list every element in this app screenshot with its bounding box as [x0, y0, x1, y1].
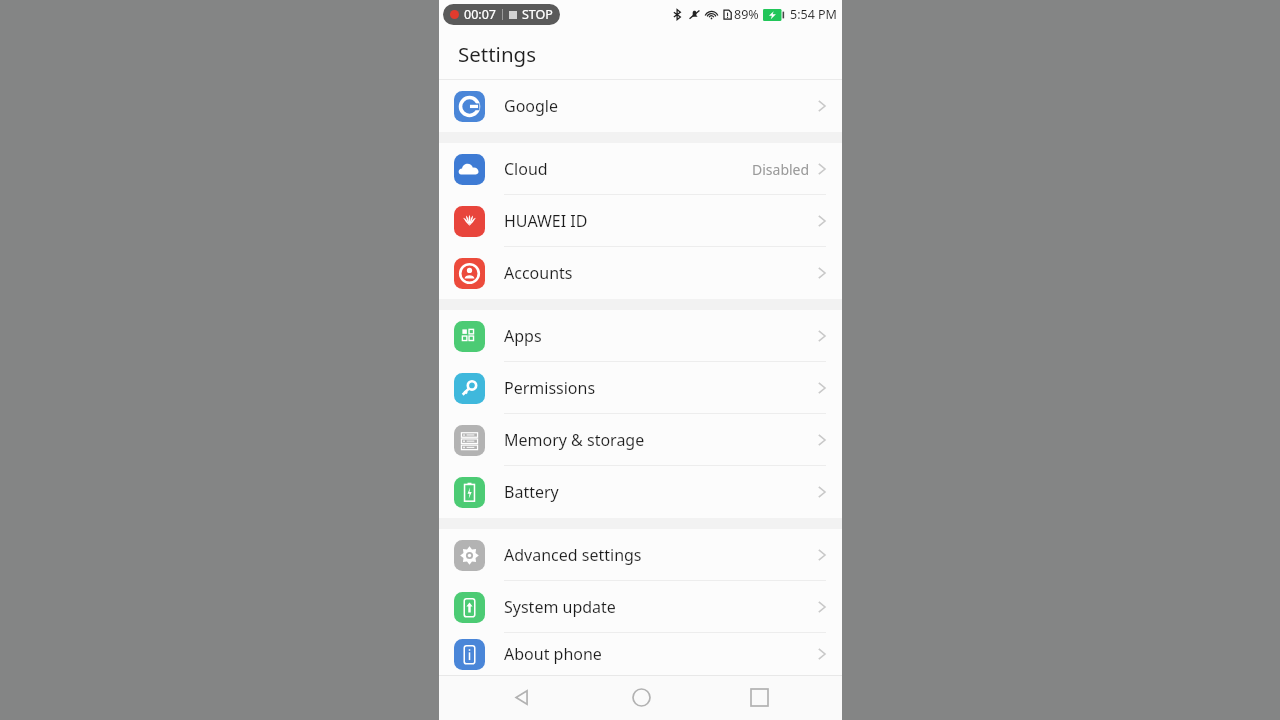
button[interactable]: Apps — [439, 310, 842, 362]
button[interactable]: Permissions — [439, 362, 842, 414]
staticText: Apps — [504, 325, 542, 347]
staticText: 89% — [734, 6, 759, 23]
button[interactable]: Home — [606, 675, 676, 720]
button[interactable]: Back — [487, 675, 557, 720]
button[interactable]: Accounts — [439, 247, 842, 299]
staticText: System update — [504, 596, 616, 618]
button[interactable]: Advanced settings — [439, 529, 842, 581]
button[interactable]: System update — [439, 581, 842, 633]
button[interactable]: Memory & storage — [439, 414, 842, 466]
staticText: Settings — [458, 40, 537, 68]
button[interactable]: HUAWEI ID — [439, 195, 842, 247]
staticText: Cloud — [504, 158, 548, 180]
staticText: Memory & storage — [504, 429, 645, 451]
button[interactable]: Cloud — [439, 143, 842, 195]
staticText: 00:07 — [464, 6, 496, 23]
staticText: Disabled — [752, 160, 810, 179]
button[interactable]: About phone — [439, 633, 842, 675]
staticText: Accounts — [504, 262, 573, 284]
button[interactable]: Battery — [439, 466, 842, 518]
staticText: STOP — [522, 6, 553, 23]
staticText: 5:54 PM — [790, 6, 837, 23]
staticText: Google — [504, 95, 559, 117]
button[interactable]: Recent apps — [724, 675, 794, 720]
staticText: HUAWEI ID — [504, 210, 588, 232]
staticText: Permissions — [504, 377, 596, 399]
staticText: Advanced settings — [504, 544, 642, 566]
staticText: About phone — [504, 643, 602, 665]
staticText: Battery — [504, 481, 559, 503]
button[interactable]: Google — [439, 80, 842, 132]
